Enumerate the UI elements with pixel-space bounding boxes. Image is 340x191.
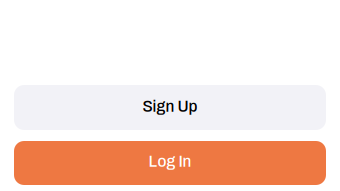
button[interactable]: Sign Up [14, 85, 326, 130]
button[interactable]: Log In [14, 141, 326, 185]
staticText: Sign Up [142, 97, 197, 115]
staticText: Log In [148, 152, 191, 170]
